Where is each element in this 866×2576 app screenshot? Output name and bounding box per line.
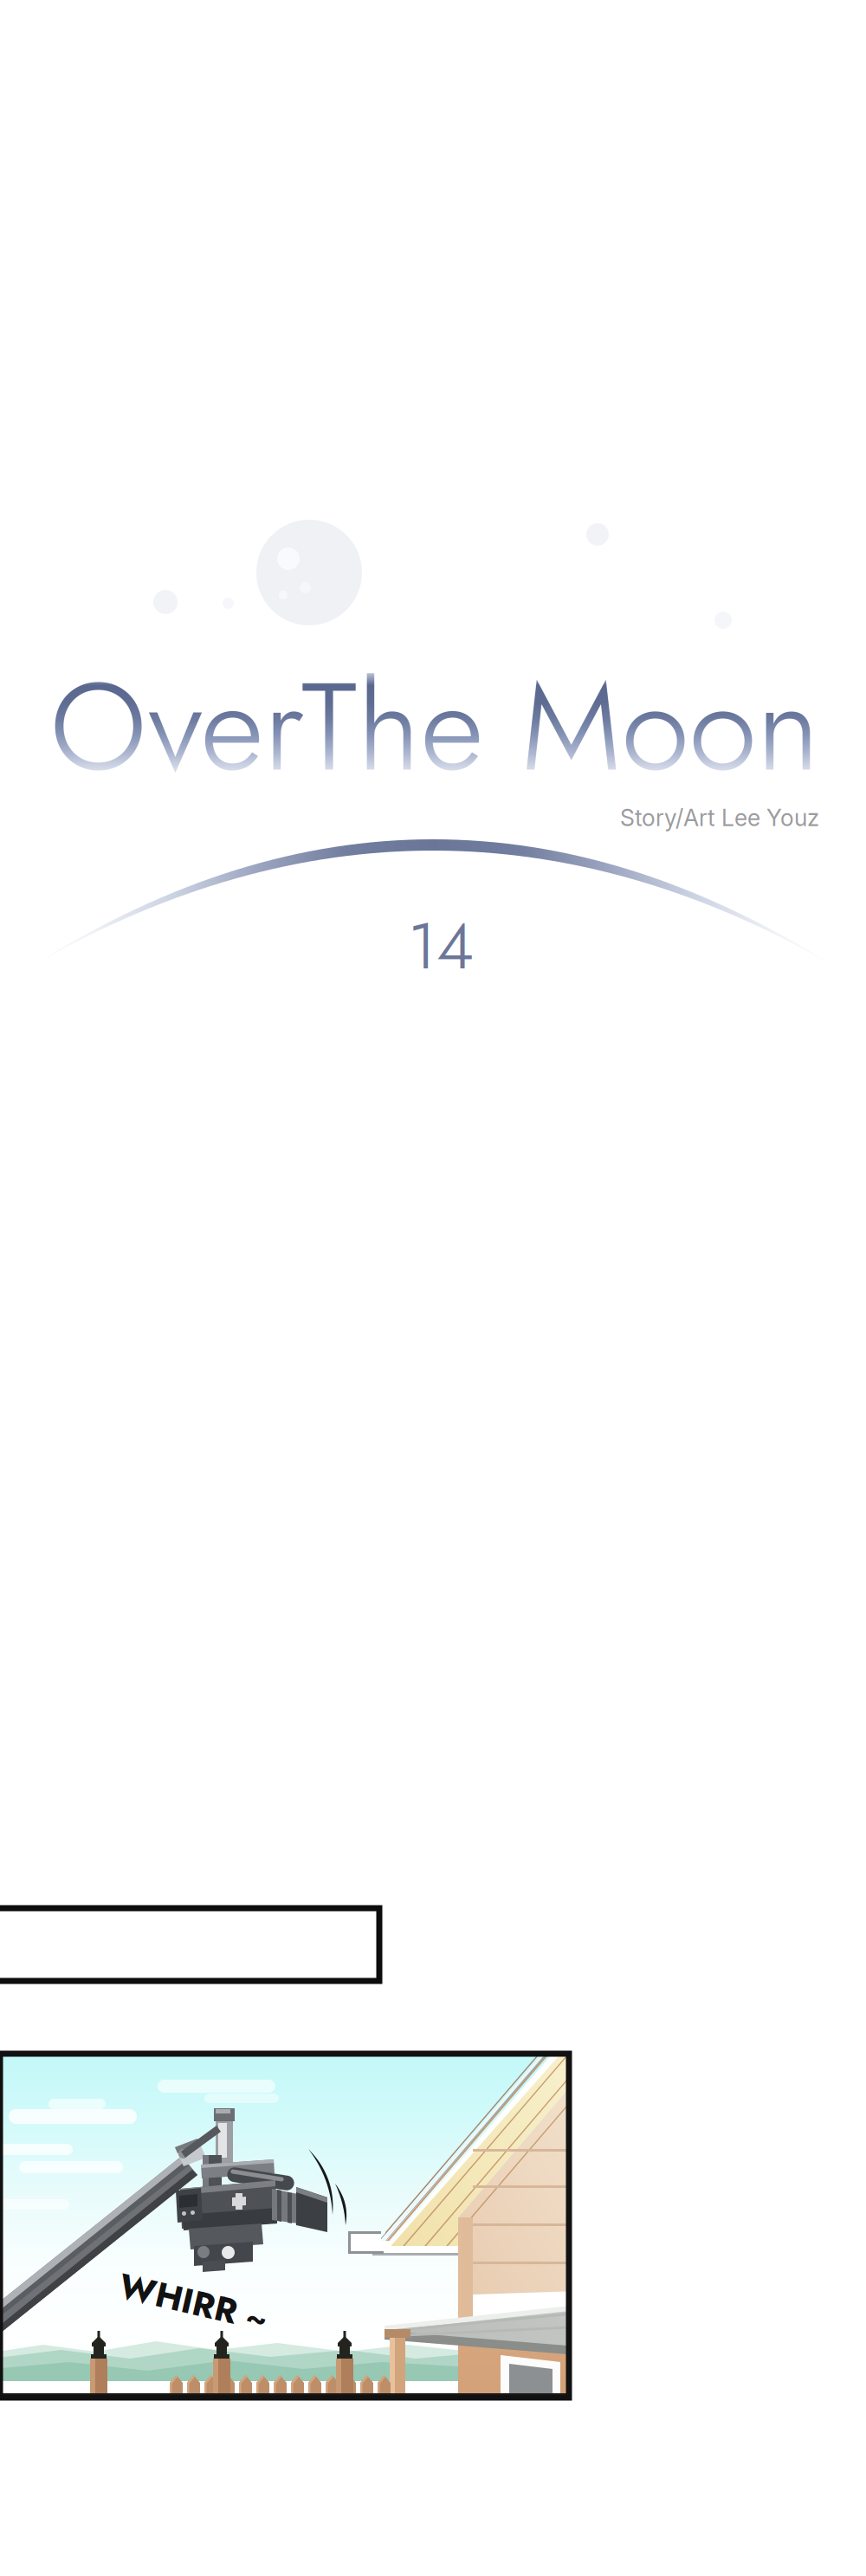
staticText: Story/Art Lee Youz xyxy=(620,804,819,832)
staticText: WHIRR ~ xyxy=(118,2277,268,2327)
staticText: 14 xyxy=(408,899,474,993)
button[interactable]: Episode panel, empty dialogue box xyxy=(0,1906,866,1984)
button[interactable]: Over The Moon, episode 14 title xyxy=(0,485,866,970)
button[interactable]: Episode panel, camera crane filming the … xyxy=(0,2054,866,2400)
